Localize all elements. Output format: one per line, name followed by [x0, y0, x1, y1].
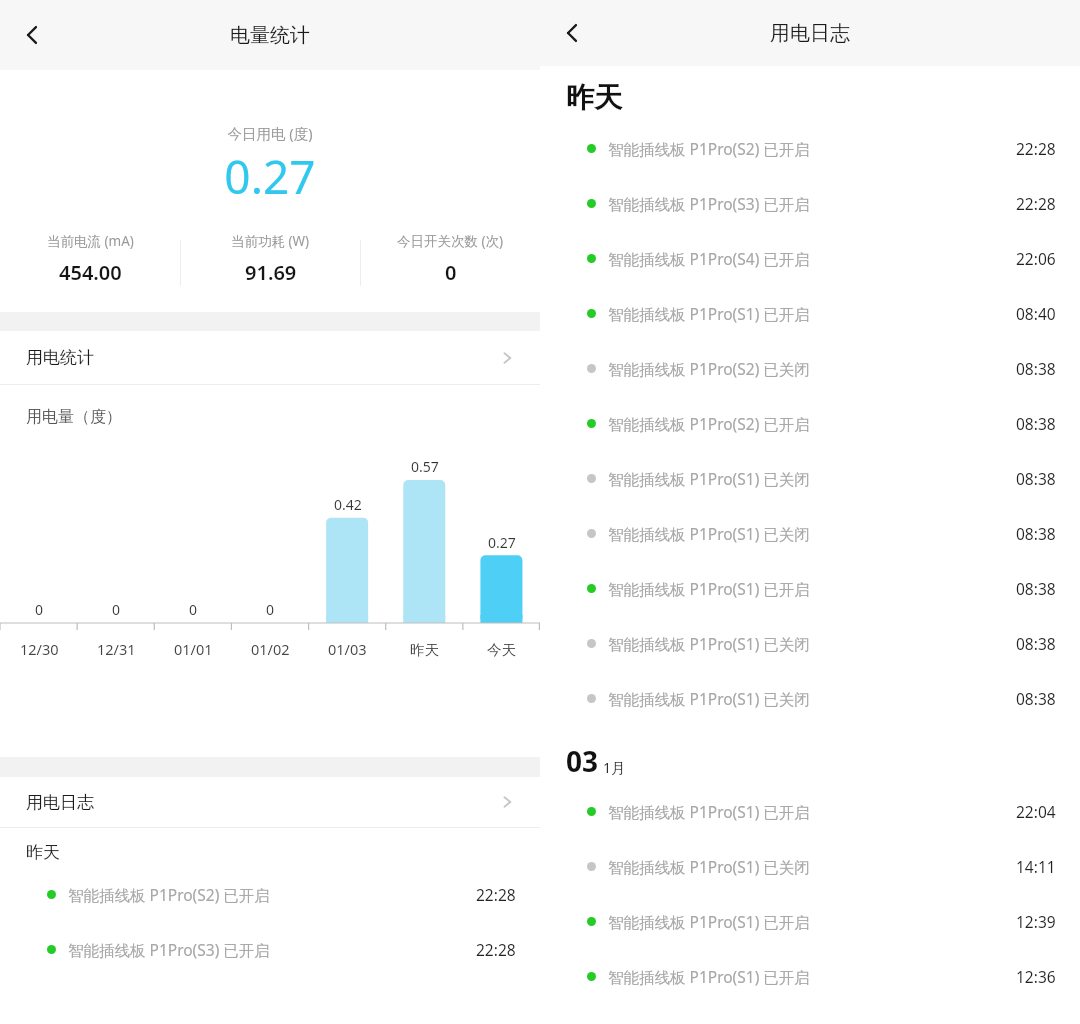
staticText: 0	[35, 600, 44, 619]
staticText: 智能插线板 P1Pro(S3) 已开启	[608, 193, 810, 214]
staticText: 智能插线板 P1Pro(S2) 已关闭	[608, 358, 810, 379]
staticText: 22:28	[1016, 193, 1056, 214]
staticText: 智能插线板 P1Pro(S1) 已开启	[608, 911, 810, 932]
staticText: 0.42	[334, 495, 362, 514]
staticText: 01/02	[251, 639, 290, 659]
button[interactable]: 智能插线板 P1Pro(S4) 已开启	[540, 231, 1080, 286]
staticText: 0	[112, 600, 121, 619]
staticText: 昨天	[26, 842, 60, 863]
staticText: 08:38	[1016, 413, 1056, 434]
button[interactable]: 用电日志	[0, 777, 540, 827]
staticText: 今日开关次数 (次)	[397, 232, 504, 250]
staticText: 08:38	[1016, 578, 1056, 599]
button[interactable]: 智能插线板 P1Pro(S2) 已开启	[540, 121, 1080, 176]
staticText: 12/31	[97, 639, 136, 659]
staticText: 智能插线板 P1Pro(S1) 已开启	[608, 801, 810, 822]
button[interactable]: 智能插线板 P1Pro(S1) 已关闭	[540, 451, 1080, 506]
staticText: 454.00	[59, 259, 122, 286]
staticText: 91.69	[245, 259, 297, 286]
staticText: 电量统计	[230, 23, 310, 48]
staticText: 用电量（度）	[26, 407, 122, 427]
staticText: 智能插线板 P1Pro(S1) 已关闭	[608, 523, 810, 544]
staticText: 12:39	[1016, 911, 1056, 932]
staticText: 12:36	[1016, 966, 1056, 987]
button[interactable]: 智能插线板 P1Pro(S3) 已开启	[540, 176, 1080, 231]
staticText: 智能插线板 P1Pro(S1) 已关闭	[608, 468, 810, 489]
staticText: 22:28	[476, 884, 516, 905]
staticText: 智能插线板 P1Pro(S1) 已关闭	[608, 856, 810, 877]
button[interactable]: 智能插线板 P1Pro(S1) 已开启	[540, 286, 1080, 341]
button[interactable]: 智能插线板 P1Pro(S2) 已开启	[0, 867, 540, 922]
button[interactable]: 智能插线板 P1Pro(S1) 已关闭	[540, 506, 1080, 561]
staticText: 0	[445, 259, 457, 286]
staticText: 22:06	[1016, 248, 1056, 269]
staticText: 智能插线板 P1Pro(S1) 已开启	[608, 578, 810, 599]
button[interactable]: 智能插线板 P1Pro(S1) 已关闭	[540, 616, 1080, 671]
button[interactable]: Back	[6, 9, 58, 61]
button[interactable]: 智能插线板 P1Pro(S1) 已关闭	[540, 839, 1080, 894]
staticText: 22:28	[476, 939, 516, 960]
staticText: 用电日志	[26, 792, 94, 813]
staticText: 0.27	[0, 145, 540, 208]
staticText: 01/01	[174, 639, 213, 659]
staticText: 08:38	[1016, 523, 1056, 544]
staticText: 智能插线板 P1Pro(S1) 已关闭	[608, 688, 810, 709]
button[interactable]: 智能插线板 P1Pro(S1) 已开启	[540, 949, 1080, 1004]
staticText: 08:38	[1016, 358, 1056, 379]
staticText: 今日用电 (度)	[0, 123, 540, 143]
staticText: 08:38	[1016, 688, 1056, 709]
button[interactable]: 智能插线板 P1Pro(S2) 已关闭	[540, 341, 1080, 396]
button[interactable]: 智能插线板 P1Pro(S1) 已关闭	[540, 671, 1080, 726]
staticText: 用电统计	[26, 347, 94, 368]
staticText: 0	[189, 600, 198, 619]
staticText: 08:40	[1016, 303, 1056, 324]
staticText: 01/03	[328, 639, 367, 659]
staticText: 0	[266, 600, 275, 619]
staticText: 0.27	[488, 533, 516, 552]
staticText: 今天	[487, 641, 516, 659]
staticText: 08:38	[1016, 633, 1056, 654]
staticText: 当前电流 (mA)	[47, 232, 134, 250]
staticText: 12/30	[20, 639, 59, 659]
staticText: 昨天	[410, 641, 439, 659]
staticText: 智能插线板 P1Pro(S2) 已开启	[608, 138, 810, 159]
button[interactable]: 智能插线板 P1Pro(S3) 已开启	[0, 922, 540, 977]
button[interactable]: Back	[546, 7, 598, 59]
staticText: 0.57	[411, 457, 439, 476]
staticText: 智能插线板 P1Pro(S1) 已开启	[608, 966, 810, 987]
staticText: 智能插线板 P1Pro(S4) 已开启	[608, 248, 810, 269]
staticText: 14:11	[1016, 856, 1056, 877]
staticText: 08:38	[1016, 468, 1056, 489]
button[interactable]: 智能插线板 P1Pro(S2) 已开启	[540, 396, 1080, 451]
button[interactable]: 智能插线板 P1Pro(S1) 已开启	[540, 784, 1080, 839]
staticText: 智能插线板 P1Pro(S3) 已开启	[68, 939, 270, 960]
staticText: 智能插线板 P1Pro(S2) 已开启	[608, 413, 810, 434]
staticText: 智能插线板 P1Pro(S1) 已关闭	[608, 633, 810, 654]
staticText: 1月	[603, 758, 626, 777]
staticText: 智能插线板 P1Pro(S1) 已开启	[608, 303, 810, 324]
staticText: 用电日志	[770, 21, 850, 46]
button[interactable]: 用电统计	[0, 331, 540, 384]
button[interactable]: 智能插线板 P1Pro(S1) 已开启	[540, 894, 1080, 949]
staticText: 03	[566, 742, 599, 780]
staticText: 22:28	[1016, 138, 1056, 159]
staticText: 22:04	[1016, 801, 1056, 822]
staticText: 智能插线板 P1Pro(S2) 已开启	[68, 884, 270, 905]
button[interactable]: 智能插线板 P1Pro(S1) 已开启	[540, 561, 1080, 616]
staticText: 当前功耗 (W)	[231, 232, 310, 250]
staticText: 昨天	[566, 80, 622, 115]
